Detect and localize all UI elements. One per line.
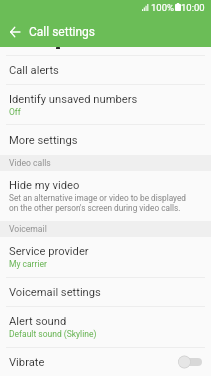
staticText: Alert sound xyxy=(9,315,67,328)
staticText: 10:00 xyxy=(181,2,205,13)
staticText: Call settings xyxy=(29,25,96,39)
button[interactable]: Voicemail settings xyxy=(0,278,211,306)
staticText: Voicemail settings xyxy=(9,286,101,299)
button[interactable]: Hide my video xyxy=(0,171,211,221)
staticText: Set an alternative image or video to be … xyxy=(9,193,186,213)
staticText: My carrier xyxy=(9,259,47,269)
button[interactable]: Vibrate toggle xyxy=(178,355,202,369)
staticText: Call alerts xyxy=(9,64,59,77)
staticText: Hide my video xyxy=(9,179,80,192)
button[interactable]: Service provider xyxy=(0,237,211,277)
staticText: 100% xyxy=(151,2,174,13)
staticText: Voicemail xyxy=(9,224,47,234)
button[interactable]: Vibrate xyxy=(0,348,211,376)
button[interactable]: Call alerts xyxy=(0,56,211,84)
staticText: Default sound (Skyline) xyxy=(9,329,97,339)
button[interactable]: Navigate up xyxy=(0,16,29,47)
button[interactable]: Identify unsaved numbers xyxy=(0,85,211,124)
staticText: More settings xyxy=(9,134,78,147)
staticText: Off xyxy=(9,107,21,117)
button[interactable]: Alert sound xyxy=(0,307,211,347)
staticText: Vibrate xyxy=(9,356,45,369)
button[interactable]: More settings xyxy=(0,125,211,155)
staticText: Identify unsaved numbers xyxy=(9,93,138,106)
staticText: Service provider xyxy=(9,245,89,258)
staticText: Video calls xyxy=(9,158,51,168)
